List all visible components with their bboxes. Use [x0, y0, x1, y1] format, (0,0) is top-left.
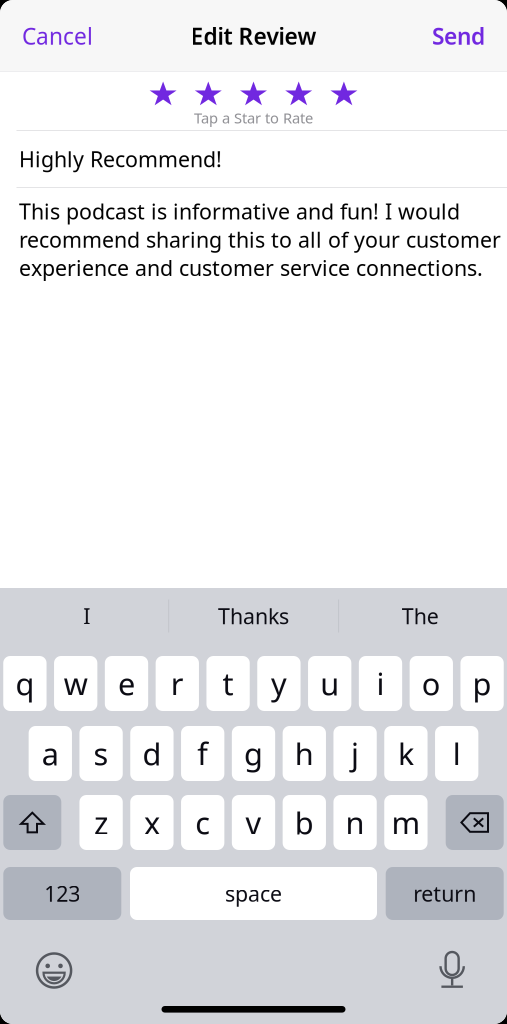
staticText: r: [171, 663, 184, 704]
staticText: This podcast is informative and fun! I w…: [19, 197, 460, 225]
staticText: h: [295, 733, 314, 774]
button[interactable]: q: [3, 656, 46, 711]
staticText: b: [295, 802, 314, 843]
button[interactable]: g: [232, 726, 275, 781]
staticText: i: [376, 663, 384, 704]
button[interactable]: f: [181, 726, 224, 781]
staticText: o: [422, 663, 441, 704]
staticText: t: [223, 663, 234, 704]
staticText: return: [413, 879, 476, 908]
button[interactable]: Thanks: [170, 588, 337, 644]
staticText: d: [142, 733, 161, 774]
staticText: w: [64, 663, 88, 704]
staticText: x: [144, 802, 160, 843]
staticText: Cancel: [22, 21, 93, 51]
staticText: p: [473, 663, 492, 704]
button[interactable]: b: [283, 795, 326, 850]
button[interactable]: n: [333, 795, 377, 850]
staticText: j: [351, 733, 359, 774]
button[interactable]: i: [359, 656, 402, 711]
button[interactable]: space: [130, 867, 377, 920]
staticText: e: [118, 663, 135, 704]
staticText: y: [271, 663, 287, 704]
staticText: recommend sharing this to all of your cu…: [19, 225, 501, 254]
button[interactable]: w: [54, 656, 97, 711]
button[interactable]: I: [3, 588, 170, 644]
button[interactable]: p: [460, 656, 504, 711]
button[interactable]: c: [181, 795, 224, 850]
button[interactable]: z: [79, 795, 123, 850]
button[interactable]: return: [386, 867, 504, 920]
staticText: Tap a Star to Rate: [194, 108, 313, 127]
staticText: space: [225, 879, 282, 908]
button[interactable]: x: [130, 795, 173, 850]
staticText: a: [42, 733, 59, 774]
staticText: f: [197, 733, 208, 774]
staticText: s: [94, 733, 109, 774]
button[interactable]: s: [79, 726, 123, 781]
button[interactable]: l: [435, 726, 478, 781]
button[interactable]: Shift: [3, 795, 61, 850]
button[interactable]: Emoji: [37, 953, 71, 987]
staticText: The: [402, 602, 439, 630]
staticText: I: [83, 602, 90, 630]
staticText: n: [346, 802, 365, 843]
button[interactable]: Delete: [446, 795, 504, 850]
button[interactable]: The: [337, 588, 504, 644]
button[interactable]: e: [105, 656, 148, 711]
button[interactable]: k: [384, 726, 427, 781]
button[interactable]: h: [283, 726, 326, 781]
button[interactable]: m: [384, 795, 427, 850]
staticText: 123: [44, 879, 80, 908]
staticText: Edit Review: [190, 21, 316, 51]
staticText: c: [195, 802, 210, 843]
staticText: m: [391, 802, 420, 843]
button[interactable]: Dictation: [440, 952, 464, 989]
button[interactable]: v: [232, 795, 275, 850]
button[interactable]: u: [308, 656, 351, 711]
staticText: l: [453, 733, 461, 774]
button[interactable]: o: [410, 656, 453, 711]
button[interactable]: Cancel: [19, 10, 96, 62]
staticText: z: [94, 802, 108, 843]
button[interactable]: d: [130, 726, 173, 781]
staticText: experience and customer service connecti…: [19, 254, 483, 282]
staticText: k: [398, 733, 414, 774]
button[interactable]: j: [333, 726, 377, 781]
button[interactable]: 123: [3, 867, 121, 920]
button[interactable]: t: [206, 656, 250, 711]
button[interactable]: r: [156, 656, 199, 711]
button[interactable]: y: [257, 656, 300, 711]
button[interactable]: Send: [429, 10, 488, 62]
staticText: v: [245, 802, 261, 843]
staticText: u: [320, 663, 339, 704]
staticText: Send: [432, 21, 485, 51]
button[interactable]: a: [29, 726, 72, 781]
staticText: g: [244, 733, 263, 774]
staticText: Highly Recommend!: [19, 145, 222, 173]
staticText: q: [15, 663, 34, 704]
staticText: Thanks: [218, 602, 289, 630]
